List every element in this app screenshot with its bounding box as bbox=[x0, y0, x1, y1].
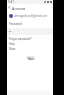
staticText: Forgot password? bbox=[9, 37, 32, 41]
staticText: Account bbox=[12, 6, 26, 11]
staticText: 9:41 bbox=[8, 0, 14, 4]
staticText: •• bbox=[9, 30, 12, 34]
button[interactable]: •• bbox=[7, 28, 53, 35]
staticText: johnappleseed@gmail.com bbox=[14, 14, 48, 18]
staticText: More bbox=[9, 47, 16, 51]
staticText: Password bbox=[9, 22, 23, 26]
button[interactable]: Next bbox=[26, 56, 35, 60]
button[interactable]: Back bbox=[14, 86, 20, 92]
button[interactable]: Home bbox=[27, 86, 33, 92]
button[interactable]: Back bbox=[7, 5, 12, 10]
staticText: Next bbox=[28, 57, 34, 60]
button[interactable]: Recents bbox=[40, 86, 46, 92]
staticText: Help bbox=[9, 42, 15, 46]
button[interactable]: johnappleseed@gmail.com bbox=[7, 13, 53, 19]
